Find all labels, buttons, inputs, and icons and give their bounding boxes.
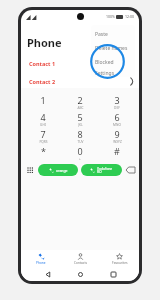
- button[interactable]: Keypad: [24, 164, 36, 176]
- staticText: GHI: [40, 123, 46, 127]
- button[interactable]: Contacts: [61, 250, 100, 267]
- staticText: 3: [114, 94, 120, 106]
- button[interactable]: Backspace: [124, 164, 136, 176]
- staticText: Delete names: [95, 45, 128, 52]
- staticText: orange: [56, 168, 68, 173]
- staticText: 9: [114, 128, 120, 140]
- button[interactable]: Settings: [91, 69, 135, 77]
- button[interactable]: orange: [38, 164, 78, 176]
- staticText: 4: [40, 111, 46, 123]
- staticText: Contact 2: [29, 78, 56, 85]
- staticText: Paste: [95, 31, 108, 38]
- staticText: Settings: [95, 70, 115, 77]
- staticText: PQRS: [39, 140, 48, 144]
- button[interactable]: Blocked: [91, 55, 135, 69]
- button[interactable]: Vodafone RO: [81, 164, 122, 176]
- button[interactable]: Favourites: [100, 250, 139, 267]
- staticText: DEF: [114, 106, 120, 110]
- staticText: Blocked: [95, 59, 114, 66]
- staticText: *: [41, 145, 46, 157]
- staticText: Phone: [27, 35, 62, 50]
- staticText: Contact 1: [29, 60, 56, 67]
- button[interactable]: 8: [65, 127, 95, 144]
- staticText: Favourites: [112, 261, 128, 265]
- staticText: 12:00: [125, 14, 134, 19]
- staticText: 0: [77, 145, 83, 157]
- staticText: 7: [40, 128, 46, 140]
- button[interactable]: 0: [65, 144, 95, 161]
- staticText: 2: [77, 94, 83, 106]
- staticText: Phone: [36, 261, 46, 265]
- button[interactable]: Back: [42, 268, 54, 280]
- button[interactable]: Paste: [91, 27, 135, 41]
- button[interactable]: Recents: [107, 268, 119, 280]
- button[interactable]: 5: [65, 110, 95, 127]
- staticText: 1: [40, 94, 46, 106]
- staticText: TUV: [77, 140, 84, 144]
- button[interactable]: Home: [74, 268, 86, 280]
- button[interactable]: 1: [28, 93, 58, 110]
- button[interactable]: 9: [102, 127, 132, 144]
- button[interactable]: Phone: [21, 250, 61, 267]
- staticText: WXYZ: [113, 140, 122, 144]
- staticText: MNO: [113, 123, 121, 127]
- staticText: 5: [77, 111, 83, 123]
- staticText: JKL: [78, 123, 83, 127]
- button[interactable]: Contact 2: [21, 77, 139, 86]
- button[interactable]: 6: [102, 110, 132, 127]
- button[interactable]: Delete names: [91, 41, 135, 55]
- button[interactable]: *: [28, 144, 58, 161]
- button[interactable]: #: [102, 144, 132, 161]
- staticText: 100%: [106, 14, 115, 19]
- staticText: 8: [77, 128, 83, 140]
- button[interactable]: 2: [65, 93, 95, 110]
- staticText: #: [114, 145, 120, 157]
- staticText: 6: [114, 111, 120, 123]
- button[interactable]: 4: [28, 110, 58, 127]
- staticText: Vodafone RO: [97, 166, 113, 174]
- button[interactable]: 3: [102, 93, 132, 110]
- staticText: Contacts: [74, 261, 88, 265]
- staticText: ABC: [77, 106, 84, 110]
- staticText: +: [79, 157, 81, 161]
- button[interactable]: Contact 1: [21, 57, 139, 69]
- button[interactable]: 7: [28, 127, 58, 144]
